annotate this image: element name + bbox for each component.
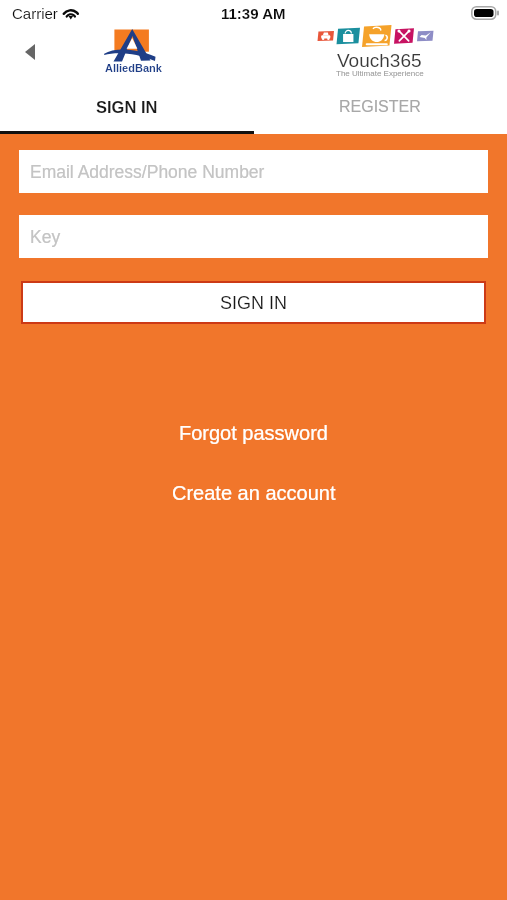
button[interactable]: Email Address/Phone Number <box>19 150 488 193</box>
button[interactable]: SIGN IN <box>0 84 253 130</box>
staticText: SIGN IN <box>220 293 288 313</box>
staticText: Email Address/Phone Number <box>30 162 265 182</box>
button[interactable]: SIGN IN <box>21 281 486 324</box>
button[interactable]: Create an account <box>0 474 507 512</box>
staticText: 11:39 AM <box>221 5 286 22</box>
button[interactable]: Back <box>12 34 47 69</box>
staticText: REGISTER <box>339 98 421 116</box>
staticText: Carrier <box>12 5 58 22</box>
staticText: Create an account <box>172 482 336 504</box>
staticText: Key <box>30 227 61 247</box>
button[interactable]: Key <box>19 215 488 258</box>
staticText: Vouch365 <box>337 50 422 71</box>
staticText: SIGN IN <box>96 98 158 116</box>
staticText: Forgot password <box>179 422 328 444</box>
staticText: AlliedBank <box>105 62 162 74</box>
staticText: The Ultimate Experience <box>336 69 424 78</box>
button[interactable]: Forgot password <box>0 414 507 452</box>
button[interactable]: REGISTER <box>253 84 507 130</box>
